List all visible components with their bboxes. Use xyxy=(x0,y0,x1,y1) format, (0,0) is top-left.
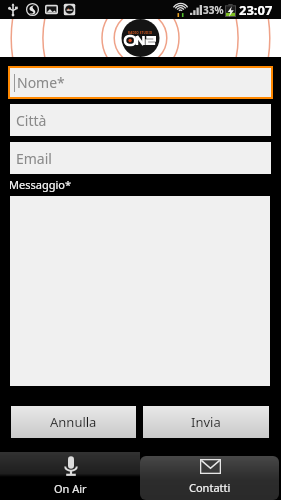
staticText: On Air xyxy=(54,481,87,496)
button[interactable]: Città xyxy=(10,104,271,136)
button[interactable]: Annulla xyxy=(11,406,136,438)
staticText: 23:07 xyxy=(239,1,273,19)
button[interactable]: Invia xyxy=(143,406,269,438)
button[interactable]: On Air xyxy=(0,452,140,500)
staticText: Email xyxy=(16,149,52,168)
staticText: Messaggio* xyxy=(9,177,71,192)
staticText: 33% xyxy=(203,3,224,17)
staticText: Invia xyxy=(191,413,221,431)
staticText: RADIO STUDIO xyxy=(128,31,153,35)
staticText: Città xyxy=(16,111,47,130)
button[interactable]: Email xyxy=(10,142,271,174)
staticText: Contatti xyxy=(189,480,231,495)
button[interactable]: Contatti xyxy=(140,456,279,500)
button[interactable]: Nome* xyxy=(10,68,271,97)
staticText: Annulla xyxy=(50,413,97,431)
staticText: Nome* xyxy=(17,73,65,92)
